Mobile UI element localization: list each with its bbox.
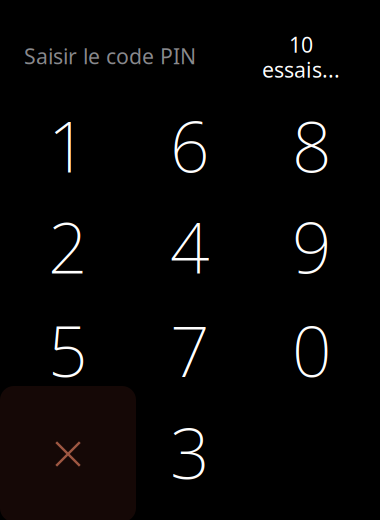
staticText: 7	[170, 304, 210, 396]
staticText: 9	[292, 200, 332, 293]
button[interactable]: 2	[7, 196, 129, 297]
button[interactable]: Effacer	[0, 386, 136, 520]
button[interactable]: 0	[251, 299, 373, 400]
staticText: 1	[48, 99, 88, 192]
staticText: 10	[289, 30, 313, 59]
staticText: essais...	[262, 55, 340, 84]
button[interactable]: 7	[129, 299, 251, 400]
button[interactable]: 9	[251, 196, 373, 297]
button[interactable]: 5	[7, 299, 129, 400]
staticText: Saisir le code PIN	[24, 42, 196, 70]
button[interactable]: 6	[129, 95, 251, 196]
staticText: 3	[170, 406, 210, 498]
button[interactable]: 1	[7, 95, 129, 196]
button[interactable]: 4	[129, 196, 251, 297]
staticText: 0	[292, 304, 332, 396]
staticText: 6	[170, 99, 210, 192]
button[interactable]: 3	[129, 401, 251, 502]
staticText: 4	[170, 200, 210, 293]
staticText: 5	[48, 304, 88, 396]
staticText: 8	[292, 99, 332, 192]
staticText: 2	[48, 200, 88, 293]
button[interactable]: 8	[251, 95, 373, 196]
